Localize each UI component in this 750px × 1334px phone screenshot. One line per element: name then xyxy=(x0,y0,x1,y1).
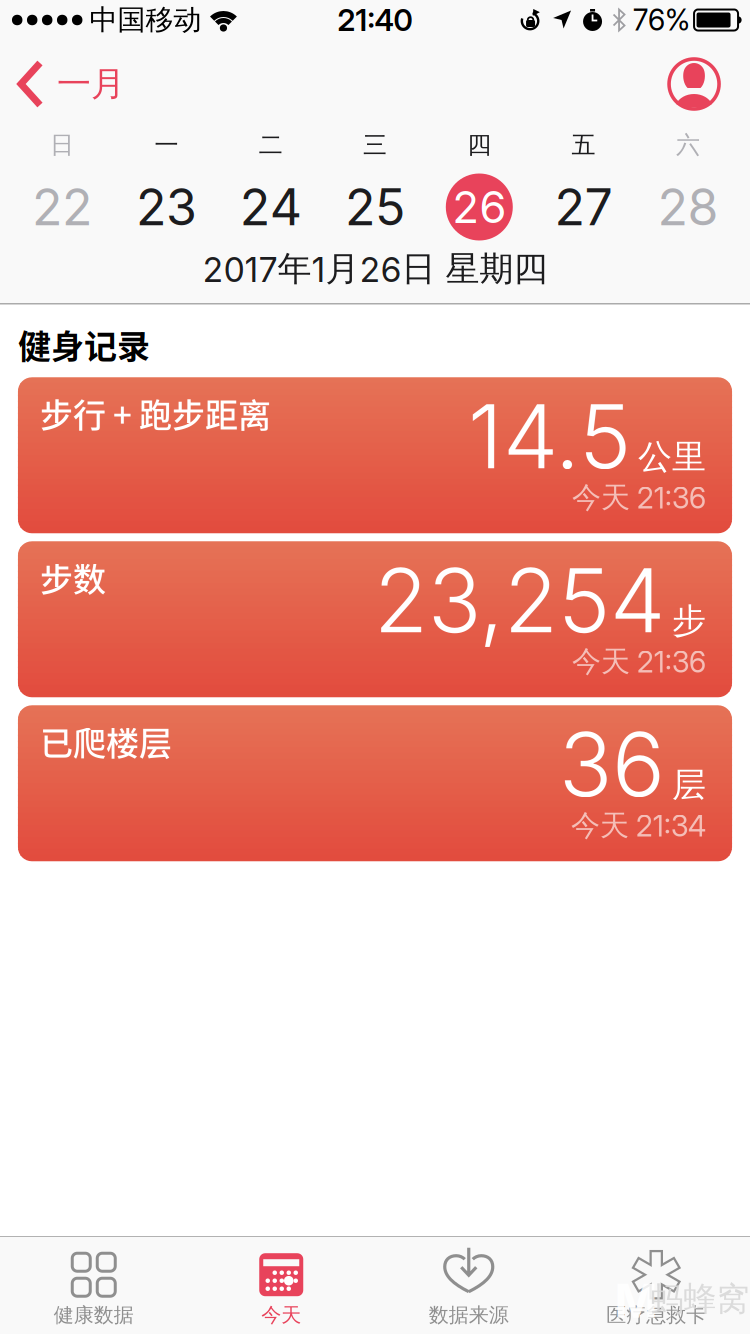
staticText: 一月 xyxy=(57,63,125,105)
staticText: 日 xyxy=(50,130,74,160)
staticText: 层 xyxy=(672,764,706,806)
staticText: 二 xyxy=(259,130,283,160)
staticText: 医疗急救卡 xyxy=(606,1303,706,1327)
button[interactable]: 步行 + 跑步距离 xyxy=(18,377,732,533)
button[interactable]: 医疗急救卡 xyxy=(562,1237,750,1334)
button[interactable]: 步数 xyxy=(18,541,732,697)
staticText: 36 xyxy=(559,712,665,816)
button[interactable]: 一月 xyxy=(0,61,125,107)
staticText: 四 xyxy=(467,130,491,160)
staticText: 步行 + 跑步距离 xyxy=(40,389,271,437)
staticText: 健身记录 xyxy=(18,320,150,368)
button[interactable]: 25 xyxy=(323,170,427,244)
staticText: 步数 xyxy=(40,553,106,601)
staticText: 数据来源 xyxy=(429,1303,509,1327)
staticText: 28 xyxy=(657,177,718,236)
staticText: 公里 xyxy=(638,436,706,478)
staticText: 三 xyxy=(363,130,387,160)
staticText: 今天 21:34 xyxy=(571,808,706,843)
staticText: 25 xyxy=(345,177,405,236)
staticText: 24 xyxy=(240,177,302,236)
staticText: 六 xyxy=(676,130,700,160)
button[interactable]: 已爬楼层 xyxy=(18,705,732,861)
button[interactable]: 今天 xyxy=(187,1237,375,1334)
staticText: 健康数据 xyxy=(54,1303,134,1327)
staticText: 步 xyxy=(672,600,706,642)
button[interactable]: 24 xyxy=(219,170,323,244)
button[interactable]: 23 xyxy=(114,170,219,244)
staticText: 22 xyxy=(32,177,92,236)
button[interactable] xyxy=(668,58,750,110)
staticText: 14.5 xyxy=(468,384,631,488)
staticText: 23,254 xyxy=(374,548,665,652)
staticText: 76% xyxy=(633,3,690,37)
staticText: 今天 21:36 xyxy=(572,644,706,679)
button[interactable]: 28 xyxy=(636,170,740,244)
staticText: 一 xyxy=(154,130,178,160)
staticText: 26 xyxy=(452,181,506,233)
staticText: 27 xyxy=(555,177,613,236)
staticText: 今天 xyxy=(261,1303,301,1327)
staticText: 23 xyxy=(136,177,197,236)
staticText: 21:40 xyxy=(337,2,412,38)
staticText: M xyxy=(614,1274,657,1328)
button[interactable]: 健康数据 xyxy=(0,1237,187,1334)
button[interactable]: 22 xyxy=(10,170,114,244)
staticText: 今天 21:36 xyxy=(572,480,706,515)
staticText: 蚂蜂窝 xyxy=(650,1279,749,1319)
button[interactable]: 27 xyxy=(531,170,636,244)
staticText: 中国移动 xyxy=(89,3,201,37)
button[interactable]: 数据来源 xyxy=(375,1237,562,1334)
staticText: 已爬楼层 xyxy=(40,717,172,765)
button[interactable]: 26 xyxy=(427,170,531,244)
staticText: 2017年1月26日 星期四 xyxy=(202,248,547,290)
staticText: 五 xyxy=(572,130,596,160)
